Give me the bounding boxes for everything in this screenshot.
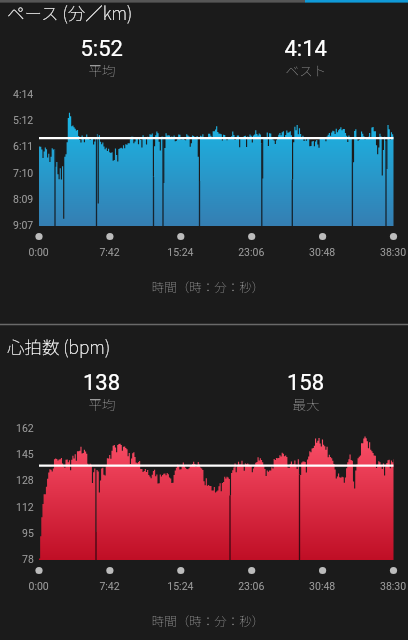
button[interactable] — [0, 0, 408, 640]
